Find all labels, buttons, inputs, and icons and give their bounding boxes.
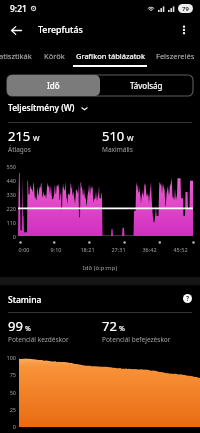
staticText: 215 [8, 127, 31, 145]
button[interactable]: Teljesítmény (W) [8, 102, 88, 114]
staticText: 0 [0, 423, 16, 430]
staticText: Átlagos [8, 145, 31, 154]
staticText: Potenciál befejezéskor [102, 335, 171, 344]
staticText: Grafikon táblázatok [76, 51, 145, 61]
staticText: Teljesítmény (W) [8, 102, 75, 114]
staticText: 75 [0, 371, 16, 378]
staticText: 550 [0, 163, 16, 170]
staticText: 110 [0, 219, 16, 226]
staticText: W [33, 134, 40, 144]
staticText: 0 [0, 233, 16, 240]
staticText: W [127, 134, 134, 144]
button[interactable]: Idő [7, 75, 100, 96]
staticText: ? [186, 294, 190, 303]
staticText: Felszerelés [156, 51, 195, 61]
staticText: 330 [0, 191, 16, 198]
staticText: 25 [0, 406, 16, 413]
staticText: Idő [47, 80, 60, 91]
staticText: % [119, 324, 125, 334]
staticText: Távolság [130, 80, 163, 91]
staticText: 18:21 [72, 246, 103, 253]
staticText: 440 [0, 177, 16, 184]
staticText: 50 [0, 389, 16, 396]
staticText: 510 [102, 127, 125, 145]
staticText: 220 [0, 205, 16, 212]
staticText: Idő (ó:p:mp) [0, 264, 200, 272]
staticText: % [25, 324, 31, 334]
staticText: 100 [0, 354, 16, 361]
staticText: Stamina [8, 294, 42, 306]
staticText: 99 [8, 317, 23, 335]
staticText: atisztikák [0, 51, 32, 61]
button[interactable]: Körök [42, 45, 72, 67]
staticText: Maximális [102, 145, 133, 154]
staticText: 27:31 [103, 246, 134, 253]
button[interactable]: Grafikon táblázatok [72, 45, 148, 67]
button[interactable]: More options [173, 19, 195, 41]
staticText: 45:52 [165, 246, 196, 253]
button[interactable]: Távolság [100, 75, 193, 96]
staticText: 72 [102, 317, 117, 335]
staticText: 36:42 [134, 246, 165, 253]
staticText: Potenciál kezdéskor [8, 335, 69, 344]
button[interactable]: Back [5, 19, 27, 41]
staticText: 9:21 [10, 3, 27, 15]
staticText: Körök [44, 51, 65, 61]
button[interactable]: Help [182, 293, 193, 304]
staticText: 0:00 [8, 246, 40, 253]
staticText: Terepfutás [38, 24, 83, 36]
staticText: 79 [182, 5, 189, 13]
button[interactable]: Felszerelés [148, 45, 200, 67]
button[interactable]: atisztikák [0, 45, 42, 67]
staticText: 9:10 [40, 246, 72, 253]
